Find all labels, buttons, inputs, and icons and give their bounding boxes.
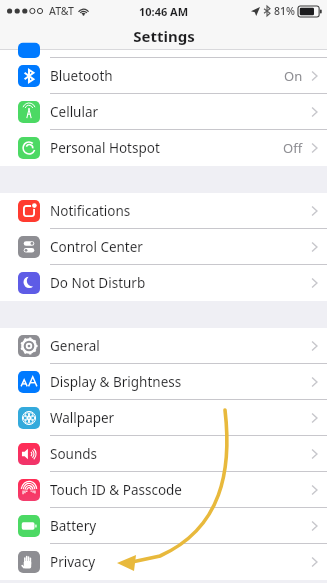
button[interactable]: Touch ID & Passcode bbox=[0, 472, 327, 508]
button[interactable]: Privacy bbox=[0, 544, 327, 580]
staticText: Privacy bbox=[50, 553, 96, 571]
button[interactable]: Wallpaper bbox=[0, 400, 327, 436]
button[interactable]: Bluetooth bbox=[0, 58, 327, 94]
staticText: Bluetooth bbox=[50, 67, 113, 85]
staticText: Sounds bbox=[50, 445, 98, 463]
button[interactable]: Display & Brightness bbox=[0, 364, 327, 400]
staticText: Personal Hotspot bbox=[50, 139, 160, 157]
staticText: Touch ID & Passcode bbox=[50, 481, 182, 499]
staticText: Wallpaper bbox=[50, 409, 115, 427]
button[interactable]: Do Not Disturb bbox=[0, 265, 327, 301]
staticText: Do Not Disturb bbox=[50, 274, 146, 292]
staticText: Display & Brightness bbox=[50, 373, 182, 391]
staticText: Control Center bbox=[50, 238, 143, 256]
staticText: 10:46 AM bbox=[139, 4, 189, 19]
staticText: Off bbox=[283, 139, 303, 157]
button[interactable]: Battery bbox=[0, 508, 327, 544]
button[interactable]: General bbox=[0, 328, 327, 364]
staticText: Notifications bbox=[50, 202, 131, 220]
staticText: AT&T bbox=[49, 4, 74, 18]
staticText: General bbox=[50, 337, 100, 355]
staticText: 81% bbox=[274, 4, 295, 18]
button[interactable]: Sounds bbox=[0, 436, 327, 472]
staticText: Settings bbox=[133, 26, 195, 46]
button[interactable]: Personal Hotspot bbox=[0, 130, 327, 166]
staticText: Battery bbox=[50, 517, 97, 535]
button[interactable]: Control Center bbox=[0, 229, 327, 265]
button[interactable]: Cellular bbox=[0, 94, 327, 130]
button[interactable]: Notifications bbox=[0, 193, 327, 229]
staticText: On bbox=[284, 67, 303, 85]
staticText: Cellular bbox=[50, 103, 99, 121]
